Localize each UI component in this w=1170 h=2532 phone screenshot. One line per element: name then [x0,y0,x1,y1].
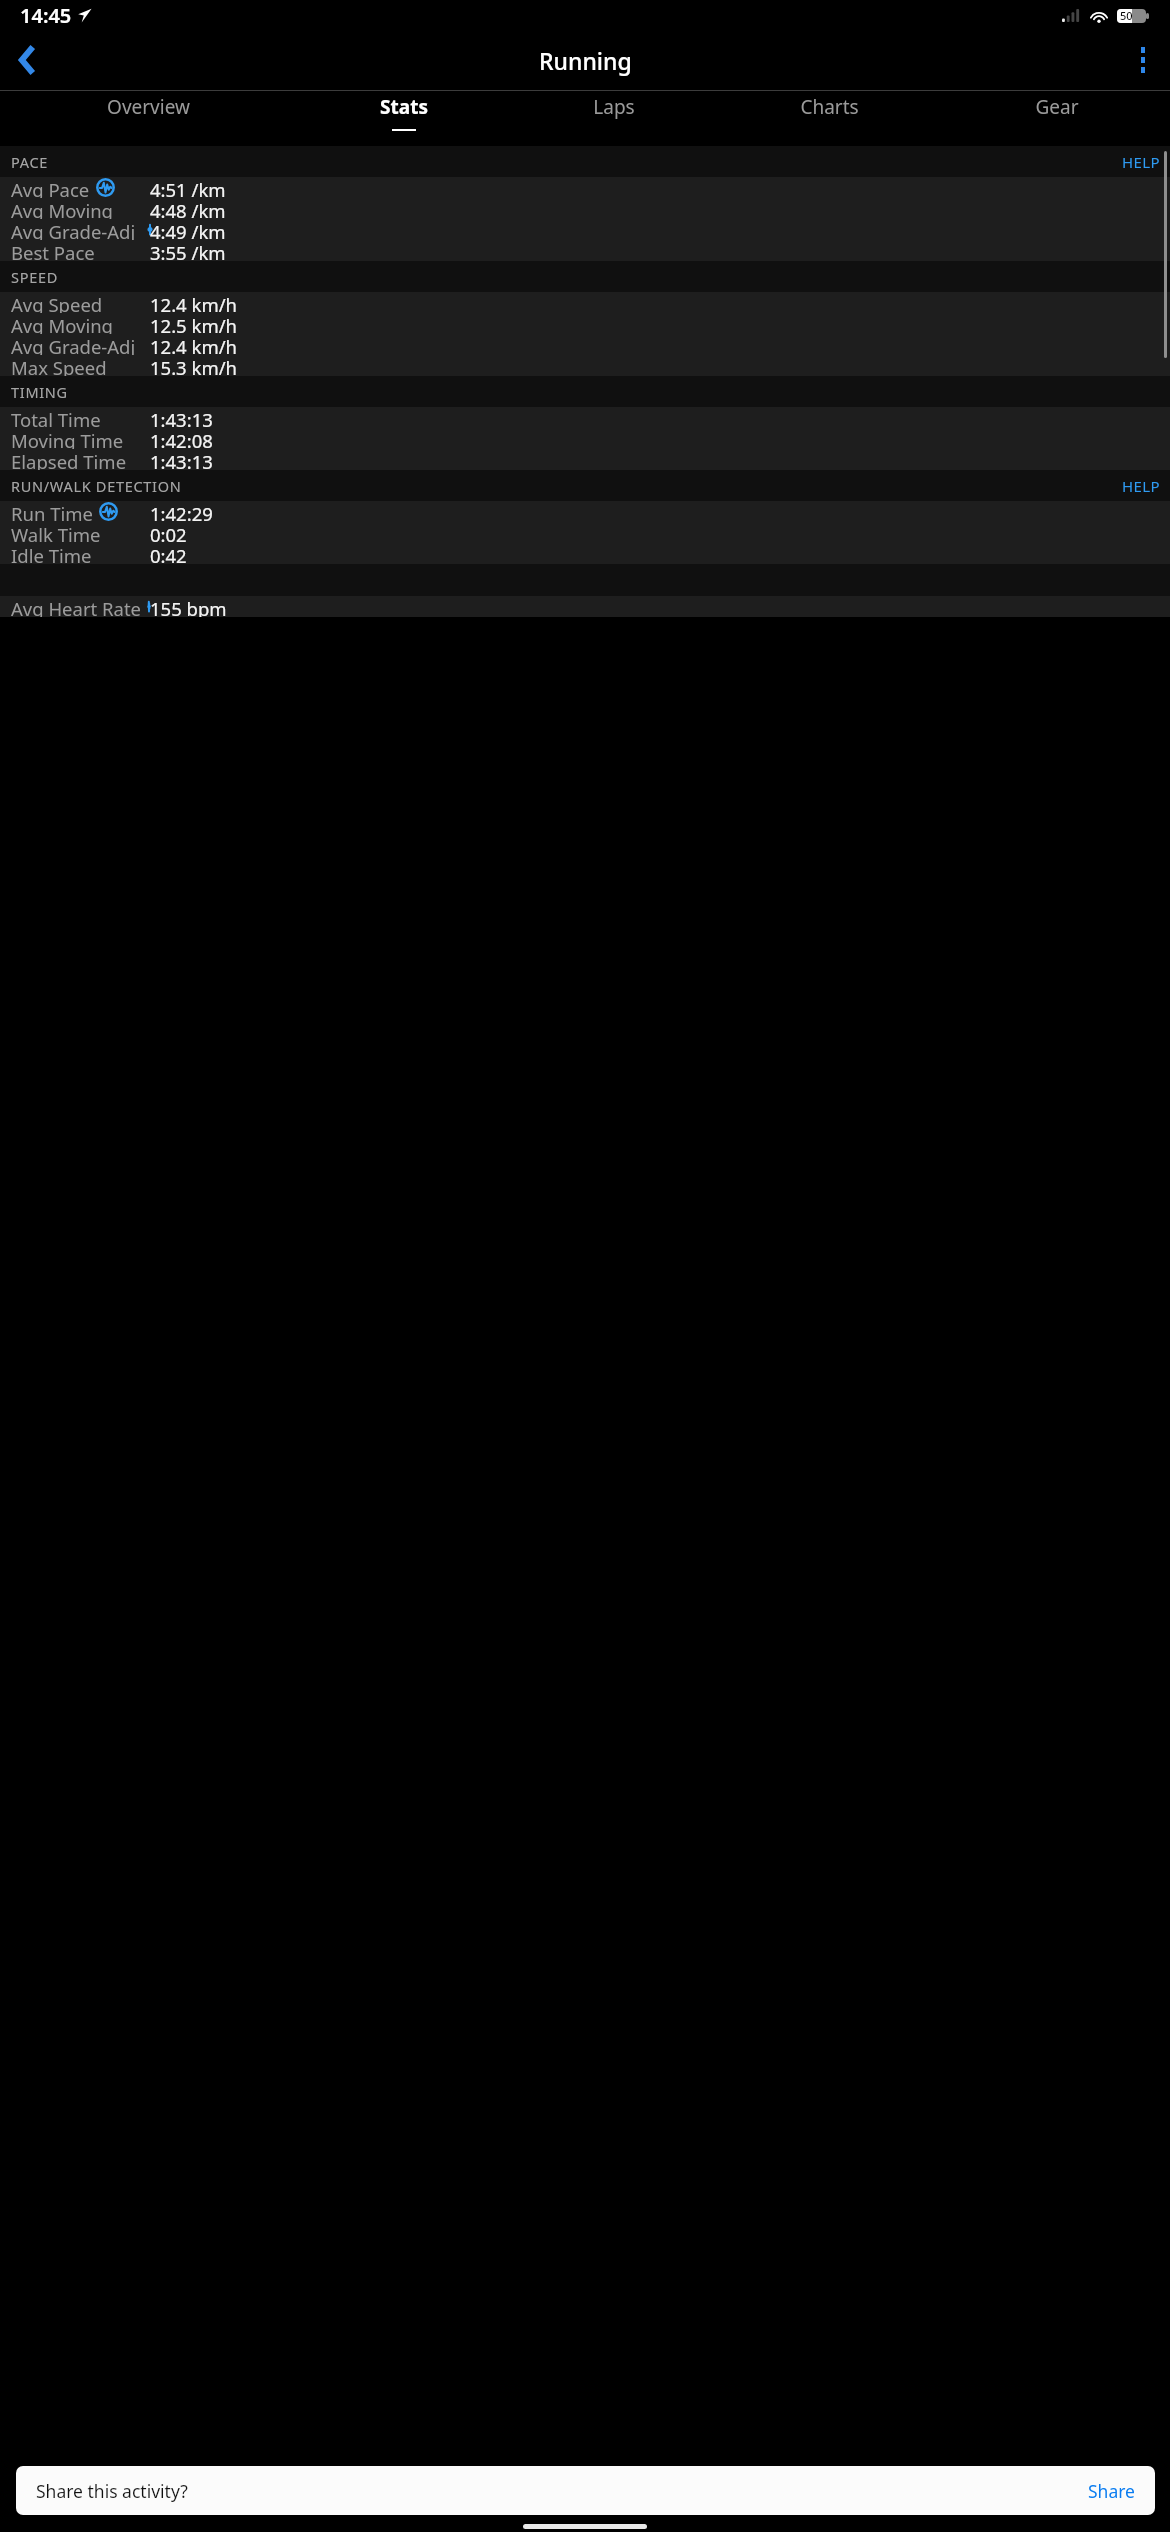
button[interactable]: HELP [1122,476,1160,496]
staticText: Avg Grade-Adj Speed [11,334,150,355]
button[interactable]: Avg Grade-Adj Pace [0,219,1170,240]
staticText: Stats [380,94,428,120]
staticText: Avg Moving Speed [11,313,150,334]
staticText: Avg Speed [11,292,103,313]
staticText: 3:55 /km [150,240,226,261]
button[interactable]: Avg Grade-Adj Speed [0,334,1170,355]
button[interactable]: Stats [296,91,512,146]
staticText: 4:51 /km [150,177,226,198]
staticText: Share [1088,2479,1135,2503]
staticText: 1:43:13 [150,449,213,470]
staticText: Running [539,45,632,76]
staticText: TIMING [11,382,68,402]
staticText: Avg Heart Rate [11,596,142,617]
button[interactable]: Elapsed Time [0,449,1170,470]
staticText: SPEED [11,267,58,287]
button[interactable]: Walk Time [0,522,1170,543]
staticText: RUN/WALK DETECTION [11,476,182,496]
button[interactable]: Total Time [0,407,1170,428]
button[interactable]: Avg Speed [0,292,1170,313]
staticText: 14:45 [20,2,72,29]
button[interactable]: Charts [716,91,943,146]
button[interactable]: Avg Moving Speed [0,313,1170,334]
staticText: Moving Time [11,428,124,449]
staticText: 12.4 km/h [150,292,238,313]
staticText: 50 [1120,8,1133,23]
staticText: Avg Grade-Adj Pace [11,219,150,240]
button[interactable]: Share this activity? [16,2466,1155,2515]
button[interactable]: Share [1088,2479,1135,2503]
staticText: 15.3 km/h [150,355,238,376]
button[interactable]: Avg Heart Rate [0,596,1170,617]
button[interactable]: Back [0,33,54,87]
staticText: Charts [800,94,859,120]
staticText: Overview [107,94,190,120]
staticText: PACE [11,152,49,172]
staticText: HELP [1122,152,1160,172]
staticText: Share this activity? [36,2479,188,2503]
button[interactable]: Moving Time [0,428,1170,449]
button[interactable]: Idle Time [0,543,1170,564]
button[interactable]: Gear [943,91,1170,146]
staticText: Avg Pace [11,177,90,198]
button[interactable]: Best Pace [0,240,1170,261]
staticText: 12.4 km/h [150,334,238,355]
staticText: Max Speed [11,355,107,376]
staticText: Walk Time [11,522,101,543]
staticText: HELP [1122,476,1160,496]
staticText: Gear [1035,94,1079,120]
staticText: 4:49 /km [150,219,226,240]
staticText: 0:02 [150,522,187,543]
staticText: Elapsed Time [11,449,127,470]
staticText: 0:42 [150,543,187,564]
staticText: 4:48 /km [150,198,226,219]
staticText: Idle Time [11,543,92,564]
staticText: 155 bpm [150,596,227,617]
staticText: Run Time [11,501,93,522]
button[interactable]: Overview [0,91,296,146]
button[interactable]: More options [1116,33,1170,87]
staticText: 12.5 km/h [150,313,238,334]
staticText: 1:43:13 [150,407,213,428]
button[interactable]: Run Time [0,501,1170,522]
staticText: Total Time [11,407,101,428]
button[interactable]: Avg Pace [0,177,1170,198]
staticText: Best Pace [11,240,95,261]
button[interactable]: Avg Moving Pace [0,198,1170,219]
staticText: 1:42:08 [150,428,213,449]
button[interactable]: Max Speed [0,355,1170,376]
staticText: Avg Moving Pace [11,198,150,219]
staticText: 1:42:29 [150,501,213,522]
button[interactable]: HELP [1122,152,1160,172]
button[interactable]: Laps [512,91,716,146]
staticText: Laps [593,94,635,120]
